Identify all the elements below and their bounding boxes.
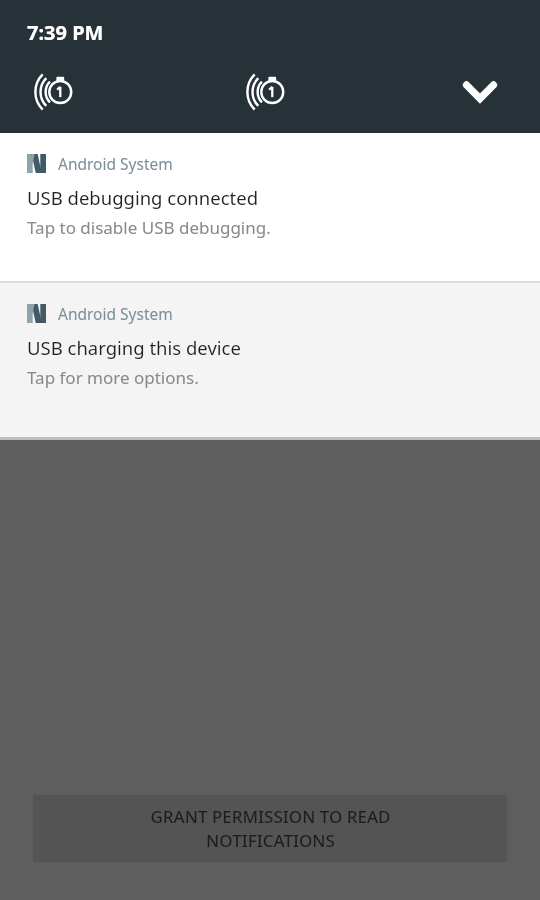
button[interactable]: Android System [0, 283, 540, 437]
button[interactable]: Android System [0, 133, 540, 281]
button[interactable]: Timer notification [242, 66, 294, 118]
staticText: Android System [58, 303, 173, 324]
staticText: 7:39 PM [27, 19, 104, 46]
staticText: USB debugging connected [27, 185, 259, 210]
staticText: USB charging this device [27, 335, 241, 360]
button[interactable]: Timer notification [30, 66, 82, 118]
staticText: Tap for more options. [27, 366, 199, 389]
staticText: GRANT PERMISSION TO READ NOTIFICATIONS [150, 805, 391, 852]
button[interactable]: GRANT PERMISSION TO READ NOTIFICATIONS [33, 795, 507, 862]
staticText: Tap to disable USB debugging. [27, 216, 271, 239]
staticText: Android System [58, 153, 173, 174]
button[interactable]: Expand notification shade [452, 64, 508, 120]
